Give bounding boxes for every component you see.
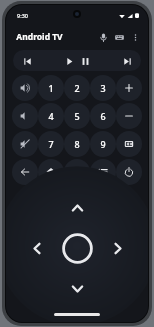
staticText: 9:30 [17,12,28,19]
staticText: 5 [74,110,80,122]
button[interactable]: Power [116,159,142,185]
button[interactable]: Select [59,230,95,266]
button[interactable]: Back [12,159,38,185]
button[interactable]: 0 [64,159,90,185]
button[interactable]: Up [62,193,92,223]
staticText: 8 [74,138,80,150]
button[interactable]: Right [102,233,132,263]
staticText: 9 [100,138,106,150]
button[interactable]: 1 [38,75,64,101]
button[interactable]: More options [127,29,143,45]
button[interactable]: Volume up [12,75,38,101]
button[interactable]: Left [22,233,52,263]
button[interactable]: 9 [90,131,116,157]
button[interactable]: 4 [38,103,64,129]
staticText: 4 [48,110,54,122]
button[interactable]: Mute [12,131,38,157]
button[interactable]: Closed captions [116,131,142,157]
button[interactable]: 6 [90,103,116,129]
button[interactable]: 8 [64,131,90,157]
button[interactable]: 3 [90,75,116,101]
button[interactable]: Menu [90,159,116,185]
button[interactable]: 7 [38,131,64,157]
staticText: 2 [74,82,80,94]
button[interactable]: Keyboard [111,29,127,45]
button[interactable]: 5 [64,103,90,129]
staticText: 6 [100,110,106,122]
staticText: 1 [48,82,54,94]
button[interactable]: Previous [19,53,35,69]
button[interactable]: Volume down [12,103,38,129]
button[interactable]: Channel down [116,103,142,129]
button[interactable]: Play [61,53,77,69]
button[interactable]: Home [38,159,64,185]
staticText: 7 [48,138,54,150]
staticText: 3 [100,82,106,94]
button[interactable]: Voice search [95,29,111,45]
button[interactable]: Next [119,53,135,69]
button[interactable]: 2 [64,75,90,101]
button[interactable]: Channel up [116,75,142,101]
button[interactable]: Down [62,273,92,303]
button[interactable]: Pause [77,53,93,69]
staticText: Android TV [16,31,63,43]
